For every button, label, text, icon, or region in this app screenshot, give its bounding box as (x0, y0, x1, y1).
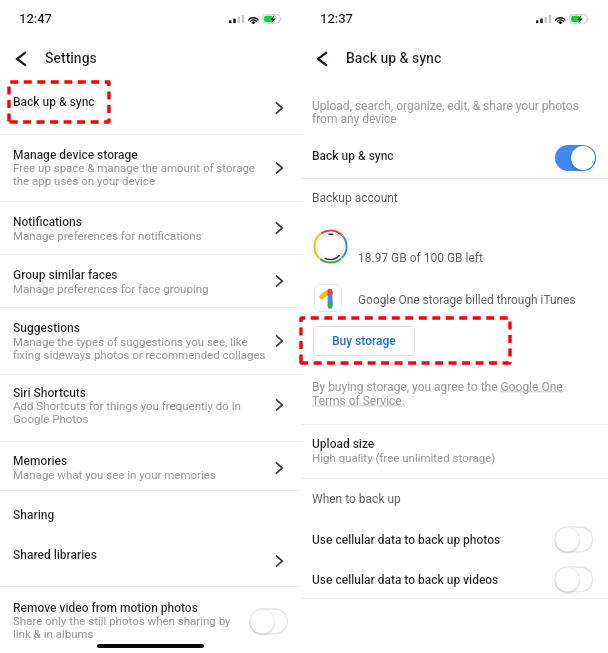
button[interactable] (0, 442, 301, 490)
staticText: Buy storage (332, 334, 396, 348)
staticText: Shared libraries (13, 548, 97, 562)
button[interactable] (0, 308, 301, 374)
staticText: Settings (45, 50, 97, 66)
button[interactable] (301, 425, 608, 478)
staticText: By buying storage, you agree to the Goog… (312, 380, 584, 408)
staticText: 12:47 (19, 11, 52, 26)
staticText: Remove video from motion photos (13, 601, 198, 615)
staticText: Use cellular data to back up photos (312, 533, 501, 547)
staticText: Add Shortcuts for things you frequently … (13, 399, 257, 425)
button[interactable] (0, 202, 301, 254)
button[interactable]: Toggle off (552, 564, 599, 596)
button[interactable]: Back (310, 45, 335, 73)
button[interactable]: By buying storage, you agree to the Goog… (312, 380, 584, 408)
staticText: Siri Shortcuts (13, 386, 86, 400)
button[interactable] (301, 519, 608, 561)
staticText: 12:37 (320, 11, 353, 26)
button[interactable]: Toggle on (552, 142, 599, 174)
staticText: Manage what you see in your memories (13, 468, 216, 481)
staticText: Share only the still photos when sharing… (13, 614, 243, 640)
staticText: When to back up (312, 492, 401, 506)
staticText: Back up & sync (13, 95, 95, 109)
staticText: Memories (13, 454, 68, 468)
button[interactable]: Toggle off (552, 524, 599, 556)
staticText: 18.97 GB of 100 GB left (358, 251, 483, 265)
staticText: Suggestions (13, 321, 80, 335)
button[interactable] (0, 77, 301, 134)
staticText: Free up space & manage the amount of sto… (13, 161, 271, 187)
button[interactable] (0, 491, 301, 531)
button[interactable]: Toggle off (247, 606, 294, 638)
staticText: Back up & sync (346, 50, 442, 66)
staticText: Notifications (13, 215, 82, 229)
staticText: Group similar faces (13, 268, 118, 282)
staticText: Manage the types of suggestions you see,… (13, 335, 276, 361)
button[interactable]: Back (9, 45, 34, 73)
button[interactable] (301, 134, 608, 178)
button[interactable] (0, 532, 301, 586)
button[interactable]: Buy storage (313, 326, 415, 356)
button[interactable] (0, 375, 301, 441)
staticText: Sharing (13, 508, 55, 522)
staticText: Manage preferences for notifications (13, 229, 202, 242)
staticText: Upload size (312, 437, 375, 451)
button[interactable] (301, 561, 608, 599)
staticText: Upload, search, organize, edit, & share … (312, 99, 592, 126)
staticText: Manage preferences for face grouping (13, 282, 209, 295)
staticText: High quality (free unlimited storage) (312, 451, 496, 464)
button[interactable] (0, 587, 301, 653)
staticText: Backup account (312, 191, 398, 205)
staticText: Manage device storage (13, 148, 138, 162)
staticText: Back up & sync (312, 149, 394, 163)
button[interactable] (0, 135, 301, 201)
staticText: Use cellular data to back up videos (312, 573, 499, 587)
staticText: Google One storage billed through iTunes (358, 293, 576, 307)
button[interactable] (0, 255, 301, 307)
